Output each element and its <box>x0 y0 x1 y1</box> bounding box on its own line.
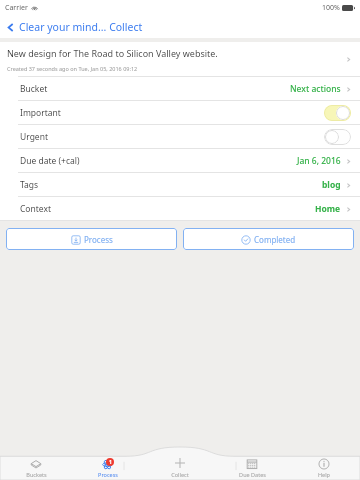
staticText: Process <box>98 471 118 478</box>
button[interactable]: Completed <box>183 228 354 250</box>
button[interactable]: Urgent toggle <box>324 129 351 145</box>
staticText: Help <box>318 471 330 478</box>
staticText: Carrier <box>5 3 28 13</box>
button[interactable]: Bucket <box>0 77 360 100</box>
staticText: Urgent <box>20 131 48 143</box>
button[interactable]: Urgent <box>0 125 360 148</box>
staticText: Home <box>315 203 341 215</box>
button[interactable]: Collect <box>144 447 216 480</box>
button[interactable]: Context <box>0 197 360 220</box>
button[interactable]: Important <box>0 101 360 124</box>
staticText: blog <box>322 179 341 191</box>
staticText: Due date (+cal) <box>20 155 80 167</box>
button[interactable]: Important toggle <box>324 105 351 121</box>
button[interactable]: 1 <box>72 447 144 480</box>
staticText: Tags <box>20 179 39 191</box>
staticText: 100% <box>322 3 340 13</box>
staticText: Process <box>84 234 113 245</box>
staticText: Due Dates <box>239 471 266 478</box>
staticText: Created 37 seconds ago on Tue, Jan 05, 2… <box>7 65 138 72</box>
staticText: Important <box>20 107 61 119</box>
button[interactable]: Tags <box>0 173 360 196</box>
button[interactable]: Process <box>6 228 177 250</box>
button[interactable]: Help <box>288 447 360 480</box>
staticText: Clear your mind... Collect <box>19 20 143 34</box>
staticText: Next actions <box>290 83 341 95</box>
staticText: Collect <box>171 471 189 478</box>
staticText: Buckets <box>26 471 47 478</box>
button[interactable]: New design for The Road to Silicon Valle… <box>0 42 360 76</box>
staticText: Context <box>20 203 52 215</box>
staticText: Completed <box>254 234 296 245</box>
button[interactable]: Due date (+cal) <box>0 149 360 172</box>
staticText: Jan 6, 2016 <box>297 155 341 167</box>
staticText: New design for The Road to Silicon Valle… <box>7 47 218 59</box>
button[interactable]: Clear your mind... Collect <box>5 18 143 36</box>
staticText: 1 <box>109 459 112 466</box>
staticText: Bucket <box>20 83 48 95</box>
button[interactable]: Due Dates <box>216 447 288 480</box>
button[interactable]: Buckets <box>0 447 72 480</box>
